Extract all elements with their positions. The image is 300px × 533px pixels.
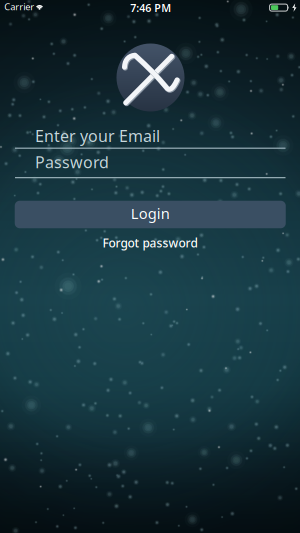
button[interactable]: Enter your Email — [15, 126, 285, 149]
button[interactable]: Password — [15, 153, 285, 179]
staticText: Carrier — [4, 0, 34, 13]
staticText: Enter your Email — [35, 125, 160, 146]
staticText: Login — [131, 204, 170, 223]
staticText: Forgot password — [102, 235, 197, 251]
staticText: Password — [35, 151, 109, 173]
staticText: 7:46 PM — [130, 1, 171, 15]
button[interactable]: Login — [15, 201, 286, 228]
button[interactable]: Forgot password — [102, 235, 197, 251]
